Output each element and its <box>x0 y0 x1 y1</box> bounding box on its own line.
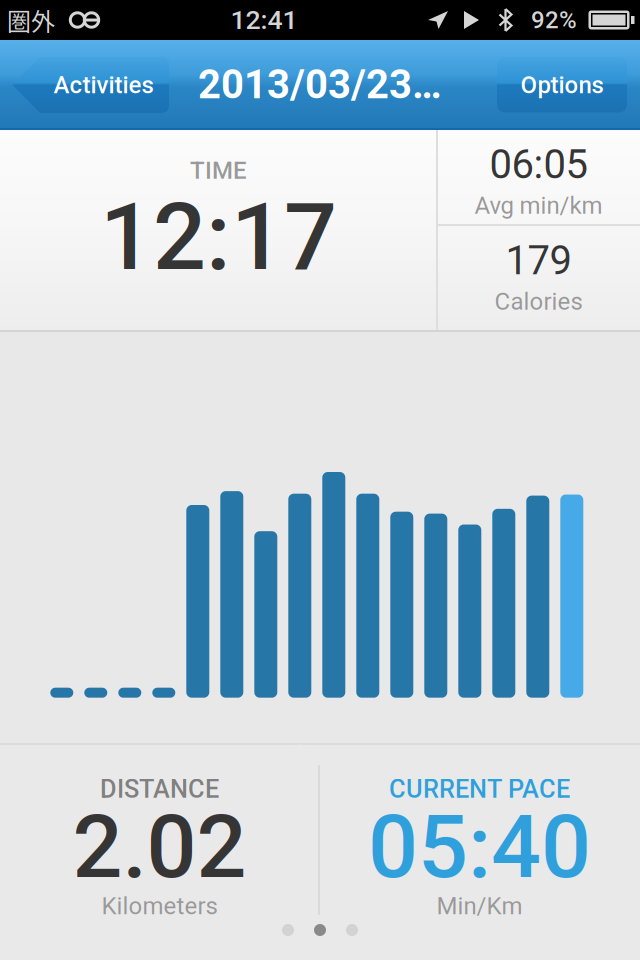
staticText: 圏外 <box>7 3 55 37</box>
staticText: 12:41 <box>230 4 297 36</box>
button[interactable]: Options <box>497 57 627 112</box>
staticText: DISTANCE <box>100 774 219 804</box>
staticText: 2.02 <box>72 795 246 898</box>
staticText: 179 <box>505 237 571 284</box>
staticText: 05:40 <box>368 795 591 898</box>
staticText: 06:05 <box>489 141 587 188</box>
button[interactable]: Activities <box>12 57 169 113</box>
staticText: 92% <box>531 6 577 34</box>
staticText: Avg min/km <box>474 191 602 219</box>
staticText: Kilometers <box>101 892 217 920</box>
staticText: TIME <box>190 156 247 184</box>
staticText: Options <box>520 71 603 99</box>
staticText: Min/Km <box>436 892 522 920</box>
staticText: 12:17 <box>100 182 337 292</box>
staticText: 2013/03/23… <box>198 61 442 108</box>
staticText: Calories <box>494 287 582 315</box>
staticText: CURRENT PACE <box>389 774 570 804</box>
staticText: Activities <box>53 71 153 99</box>
